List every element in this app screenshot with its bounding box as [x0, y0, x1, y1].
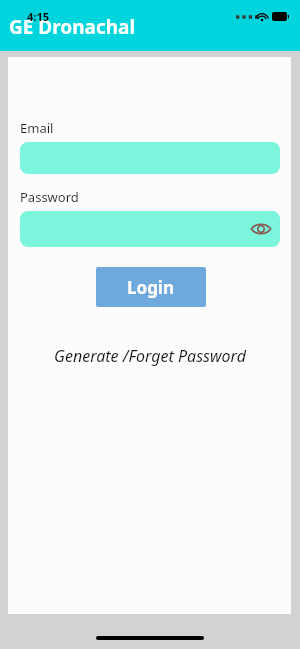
staticText: Password [20, 188, 79, 206]
staticText: 4:15 [27, 9, 49, 24]
button[interactable]: Generate /Forget Password [8, 343, 291, 369]
staticText: Email [20, 119, 54, 137]
staticText: Generate /Forget Password [54, 345, 246, 367]
button[interactable]: Show password [248, 216, 274, 242]
staticText: GE Dronachal [9, 14, 136, 40]
staticText: Login [127, 276, 175, 299]
button[interactable]: Show password [20, 211, 280, 247]
button[interactable] [20, 142, 280, 174]
button[interactable]: Login [96, 267, 206, 307]
